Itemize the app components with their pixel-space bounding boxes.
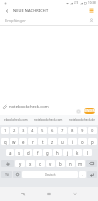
staticText: b	[59, 161, 62, 167]
button[interactable]: w	[10, 138, 18, 145]
button[interactable]: .	[79, 171, 86, 178]
button[interactable]: x	[26, 160, 35, 167]
staticText: m	[78, 161, 83, 167]
button[interactable]: Shift	[1, 160, 14, 167]
staticText: c	[39, 161, 42, 167]
staticText: a	[9, 150, 12, 156]
button[interactable]: a	[6, 149, 14, 156]
button[interactable]: h	[53, 149, 62, 156]
staticText: p	[91, 139, 94, 145]
button[interactable]: q	[1, 138, 9, 145]
button[interactable]: Deutsch	[22, 171, 78, 178]
button[interactable]: Backspace	[86, 160, 97, 167]
staticText: LTE	[74, 1, 79, 5]
button[interactable]: Add contact	[84, 15, 98, 26]
staticText: d	[27, 150, 30, 156]
staticText: t	[42, 139, 44, 145]
button[interactable]: f	[33, 149, 42, 156]
button[interactable]: i	[68, 138, 77, 145]
button[interactable]: Emoji	[13, 171, 21, 178]
staticText: j	[67, 150, 69, 156]
staticText: u	[61, 139, 64, 145]
button[interactable]: Recents	[10, 187, 36, 201]
button[interactable]: Empfänger	[0, 15, 98, 26]
staticText: 8	[71, 128, 74, 134]
button[interactable]: v	[46, 160, 55, 167]
staticText: 2	[13, 128, 16, 134]
staticText: l	[87, 150, 89, 156]
button[interactable]: 0	[88, 127, 97, 134]
button[interactable]: SENDEN	[84, 108, 95, 114]
staticText: Empfänger	[5, 18, 26, 23]
button[interactable]: s	[15, 149, 23, 156]
staticText: i	[72, 139, 74, 145]
button[interactable]: t	[38, 138, 47, 145]
staticText: 7	[61, 128, 64, 134]
button[interactable]: j	[63, 149, 72, 156]
staticText: 0	[91, 128, 94, 134]
button[interactable]: Add	[76, 109, 81, 114]
staticText: SENDEN	[84, 109, 95, 113]
button[interactable]: !?#	[1, 171, 12, 178]
staticText: g	[46, 150, 49, 156]
button[interactable]: Back	[62, 187, 88, 201]
staticText: o	[81, 139, 84, 145]
staticText: n	[69, 161, 72, 167]
button[interactable]: Enter	[87, 171, 97, 178]
staticText: 5	[41, 128, 44, 134]
button[interactable]: z	[48, 138, 57, 145]
staticText: f	[37, 150, 39, 156]
staticText: v	[49, 161, 52, 167]
button[interactable]: c	[36, 160, 45, 167]
staticText: z	[51, 139, 54, 145]
button[interactable]: 9	[78, 127, 87, 134]
button[interactable]: g	[43, 149, 52, 156]
button[interactable]: Back	[0, 6, 13, 15]
button[interactable]: b	[56, 160, 65, 167]
staticText: 9	[81, 128, 84, 134]
button[interactable]: 3	[19, 127, 27, 134]
button[interactable]: notebookcheck.com	[32, 115, 65, 125]
button[interactable]: 1	[1, 127, 9, 134]
staticText: w	[12, 139, 16, 145]
button[interactable]: More options	[84, 6, 98, 15]
staticText: notebookcheck.de	[69, 118, 95, 122]
staticText: .	[82, 172, 83, 177]
staticText: r	[32, 139, 34, 145]
button[interactable]: o	[78, 138, 87, 145]
button[interactable]: e	[19, 138, 27, 145]
button[interactable]: u	[58, 138, 67, 145]
button[interactable]: r	[28, 138, 37, 145]
button[interactable]: d	[24, 149, 32, 156]
button[interactable]: 4	[28, 127, 37, 134]
button[interactable]: 8	[68, 127, 77, 134]
staticText: NEUE NACHRICHT	[13, 8, 49, 13]
staticText: !?#	[5, 173, 9, 177]
button[interactable]: 2	[10, 127, 18, 134]
button[interactable]: ebookcheck.com	[0, 115, 32, 125]
button[interactable]: notebookcheck.de	[65, 115, 98, 125]
button[interactable]: 5	[38, 127, 47, 134]
button[interactable]: Home	[36, 187, 62, 201]
staticText: 6	[51, 128, 54, 134]
staticText: x	[29, 161, 32, 167]
button[interactable]: m	[76, 160, 85, 167]
button[interactable]: 6	[48, 127, 57, 134]
staticText: 3	[22, 128, 25, 134]
staticText: q	[4, 139, 7, 145]
button[interactable]: n	[66, 160, 75, 167]
button[interactable]: y	[15, 160, 25, 167]
button[interactable]: Attach	[0, 100, 9, 113]
staticText: 1	[4, 128, 7, 134]
staticText: s	[18, 150, 21, 156]
staticText: ebookcheck.com	[4, 118, 28, 122]
staticText: 4	[31, 128, 34, 134]
staticText: notebookcheck.com	[9, 104, 49, 110]
button[interactable]: k	[73, 149, 82, 156]
button[interactable]: l	[83, 149, 92, 156]
button[interactable]: p	[88, 138, 97, 145]
button[interactable]: 7	[58, 127, 67, 134]
staticText: e	[22, 139, 25, 145]
staticText: notebookcheck.com	[34, 118, 63, 122]
staticText: y	[19, 161, 22, 167]
